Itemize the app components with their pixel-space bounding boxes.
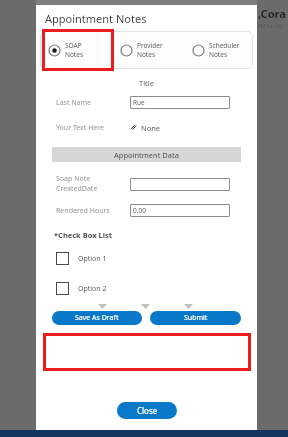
button[interactable]: Provider	[120, 41, 192, 59]
button[interactable]: Option 2	[56, 282, 253, 295]
staticText: Option 2	[78, 284, 107, 294]
button[interactable]: Rue	[130, 96, 230, 109]
staticText: Close	[137, 405, 158, 416]
staticText: Scheduler	[209, 41, 240, 50]
button[interactable]: Scheduler	[192, 41, 253, 59]
staticText: Notes	[65, 50, 83, 59]
staticText: Soap Note	[56, 174, 91, 184]
staticText: Notes	[209, 50, 227, 59]
other: Attachment	[130, 124, 138, 132]
staticText: Rendered Hours	[56, 206, 110, 216]
staticText: Notes	[137, 50, 155, 59]
button[interactable]: 0.00	[130, 204, 230, 217]
staticText: None	[141, 123, 161, 133]
staticText: Title	[139, 78, 154, 88]
staticText: Save As Draft	[75, 313, 119, 323]
staticText: Appointment Notes	[45, 11, 147, 26]
staticText: *Check Box List	[54, 230, 112, 240]
button[interactable]	[130, 178, 230, 191]
staticText: CreatedDate	[56, 184, 98, 194]
staticText: ,Cora	[258, 6, 286, 21]
staticText: Rue	[133, 98, 145, 107]
staticText: Appointment Data	[114, 150, 179, 160]
staticText: Provider	[137, 41, 163, 50]
staticText: SOAP	[65, 41, 82, 50]
button[interactable]: Submit	[150, 311, 241, 325]
staticText: PM Facility	[258, 23, 283, 30]
staticText: 0.00	[133, 206, 146, 215]
staticText: Submit	[184, 313, 208, 323]
staticText: Option 1	[78, 254, 107, 264]
button[interactable]: Save As Draft	[52, 311, 142, 325]
button[interactable]: Option 1	[56, 252, 253, 265]
button[interactable]: Attachment	[130, 123, 161, 133]
button[interactable]: Close	[117, 402, 177, 419]
button[interactable]: SOAP	[48, 41, 120, 59]
staticText: Last Name	[56, 98, 92, 108]
staticText: Your Text Here	[56, 123, 104, 133]
